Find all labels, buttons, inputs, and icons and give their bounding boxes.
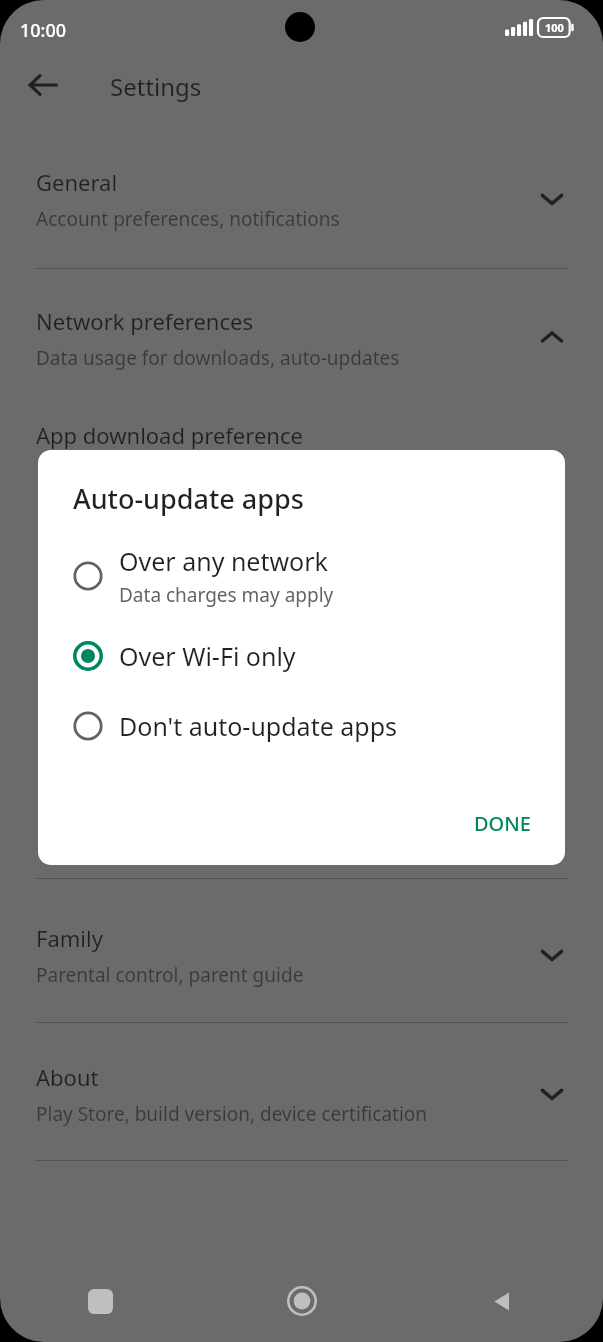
button[interactable]: General (0, 160, 603, 238)
staticText: General (36, 167, 118, 197)
button[interactable]: Don't auto-update apps (38, 695, 565, 757)
button[interactable]: DONE (462, 800, 543, 847)
staticText: 100 (545, 20, 564, 35)
button[interactable]: Family (0, 916, 603, 994)
staticText: Data charges may apply (119, 582, 334, 608)
staticText: Account preferences, notifications (36, 206, 340, 232)
button[interactable]: Over Wi-Fi only (38, 625, 565, 687)
button[interactable]: Recents (0, 1260, 201, 1342)
staticText: App download preference (36, 420, 303, 450)
staticText: Family (36, 923, 103, 953)
button[interactable]: About (0, 1055, 603, 1133)
button[interactable]: Network preferences (0, 299, 603, 377)
staticText: Don't auto-update apps (119, 709, 398, 743)
staticText: Auto-update apps (73, 480, 304, 517)
staticText: About (36, 1062, 99, 1092)
staticText: Over Wi-Fi only (119, 639, 296, 673)
button[interactable]: Back (20, 62, 66, 108)
button[interactable]: Over any network (38, 540, 565, 612)
staticText: Play Store, build version, device certif… (36, 1101, 428, 1127)
staticText: Over any network (119, 544, 328, 578)
staticText: Network preferences (36, 306, 253, 336)
staticText: Settings (110, 70, 202, 103)
staticText: 10:00 (20, 18, 67, 43)
staticText: DONE (474, 810, 531, 837)
button[interactable]: Home (201, 1260, 402, 1342)
staticText: Data usage for downloads, auto-updates (36, 345, 400, 371)
staticText: Parental control, parent guide (36, 962, 304, 988)
button[interactable]: Back (402, 1260, 603, 1342)
